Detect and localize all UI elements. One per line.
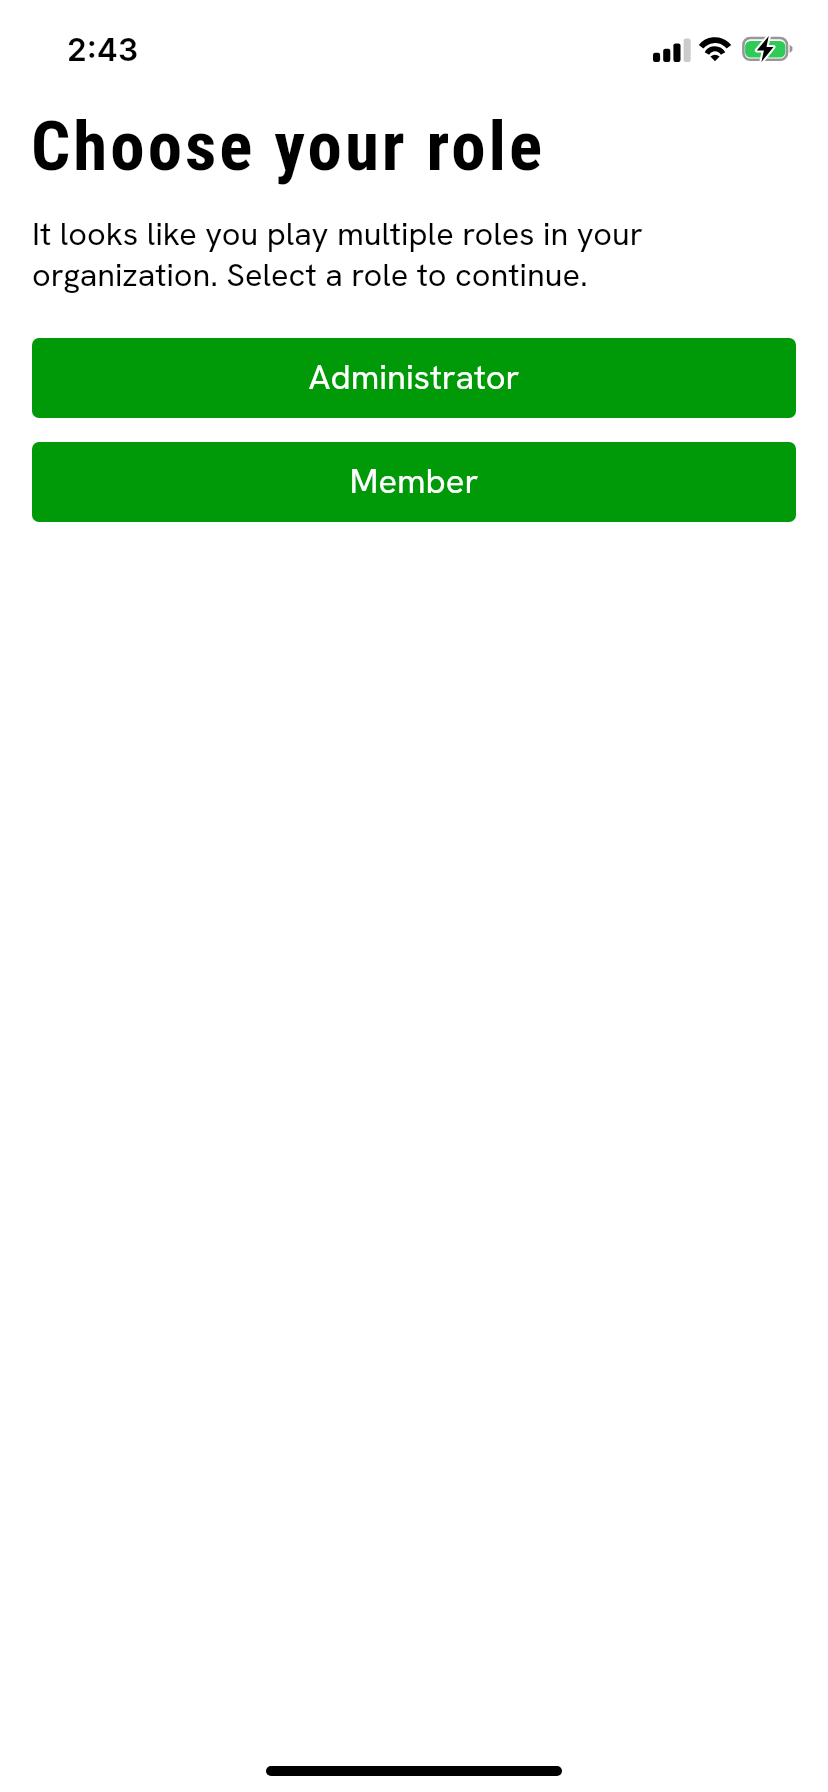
other: Cellular signal strength — [653, 38, 690, 62]
staticText: Administrator — [308, 358, 520, 398]
staticText: Member — [349, 462, 479, 502]
button[interactable]: Member — [32, 442, 796, 522]
button[interactable]: Administrator — [32, 338, 796, 418]
staticText: 2:43 — [67, 27, 139, 69]
staticText: It looks like you play multiple roles in… — [32, 214, 742, 296]
other: Wi-Fi connected — [699, 37, 731, 61]
other: Battery charging — [742, 36, 794, 62]
staticText: Choose your role — [31, 107, 546, 187]
